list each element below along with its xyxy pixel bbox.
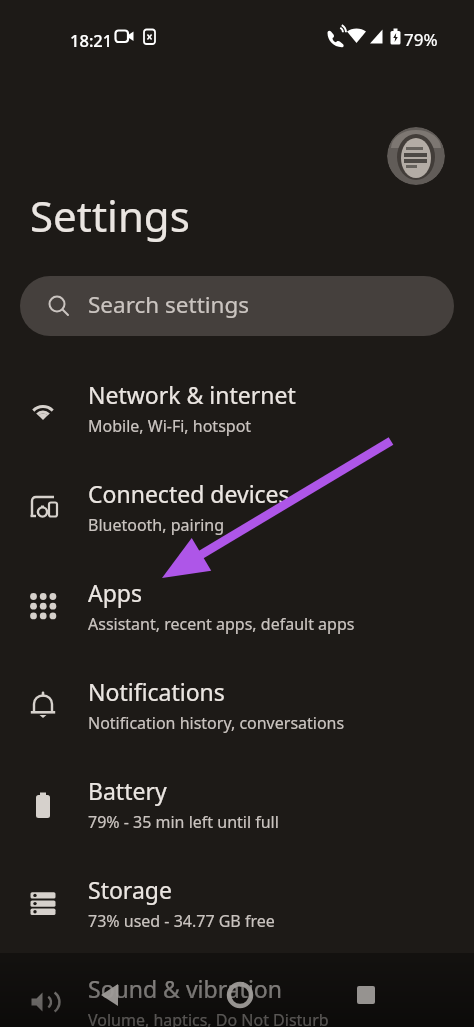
staticText: Settings xyxy=(30,187,190,244)
staticText: Network & internet xyxy=(88,379,296,410)
button[interactable]: Storage xyxy=(0,855,474,954)
staticText: Storage xyxy=(88,874,172,905)
button[interactable]: Search settings xyxy=(20,276,454,336)
staticText: 73% used - 34.77 GB free xyxy=(88,910,275,932)
button[interactable] xyxy=(316,953,474,1027)
button[interactable] xyxy=(0,953,158,1027)
staticText: Search settings xyxy=(88,289,250,320)
staticText: Sound & vibration xyxy=(88,973,282,1004)
staticText: 79% xyxy=(404,28,438,51)
staticText: Notifications xyxy=(88,676,225,707)
button[interactable]: Sound & vibration xyxy=(0,954,474,1027)
button[interactable] xyxy=(387,127,445,185)
staticText: Apps xyxy=(88,577,143,608)
button[interactable]: Connected devices xyxy=(0,459,474,558)
button[interactable]: Apps xyxy=(0,558,474,657)
staticText: Volume, haptics, Do Not Disturb xyxy=(88,1009,329,1027)
staticText: Assistant, recent apps, default apps xyxy=(88,613,355,635)
staticText: Bluetooth, pairing xyxy=(88,514,225,536)
staticText: Mobile, Wi-Fi, hotspot xyxy=(88,415,252,437)
staticText: 79% - 35 min left until full xyxy=(88,811,279,833)
button[interactable] xyxy=(158,953,316,1027)
button[interactable]: Battery xyxy=(0,756,474,855)
button[interactable]: Network & internet xyxy=(0,360,474,459)
staticText: Battery xyxy=(88,775,167,806)
button[interactable]: Notifications xyxy=(0,657,474,756)
staticText: Notification history, conversations xyxy=(88,712,345,734)
staticText: 18:21 xyxy=(70,29,113,51)
staticText: Connected devices xyxy=(88,478,290,509)
